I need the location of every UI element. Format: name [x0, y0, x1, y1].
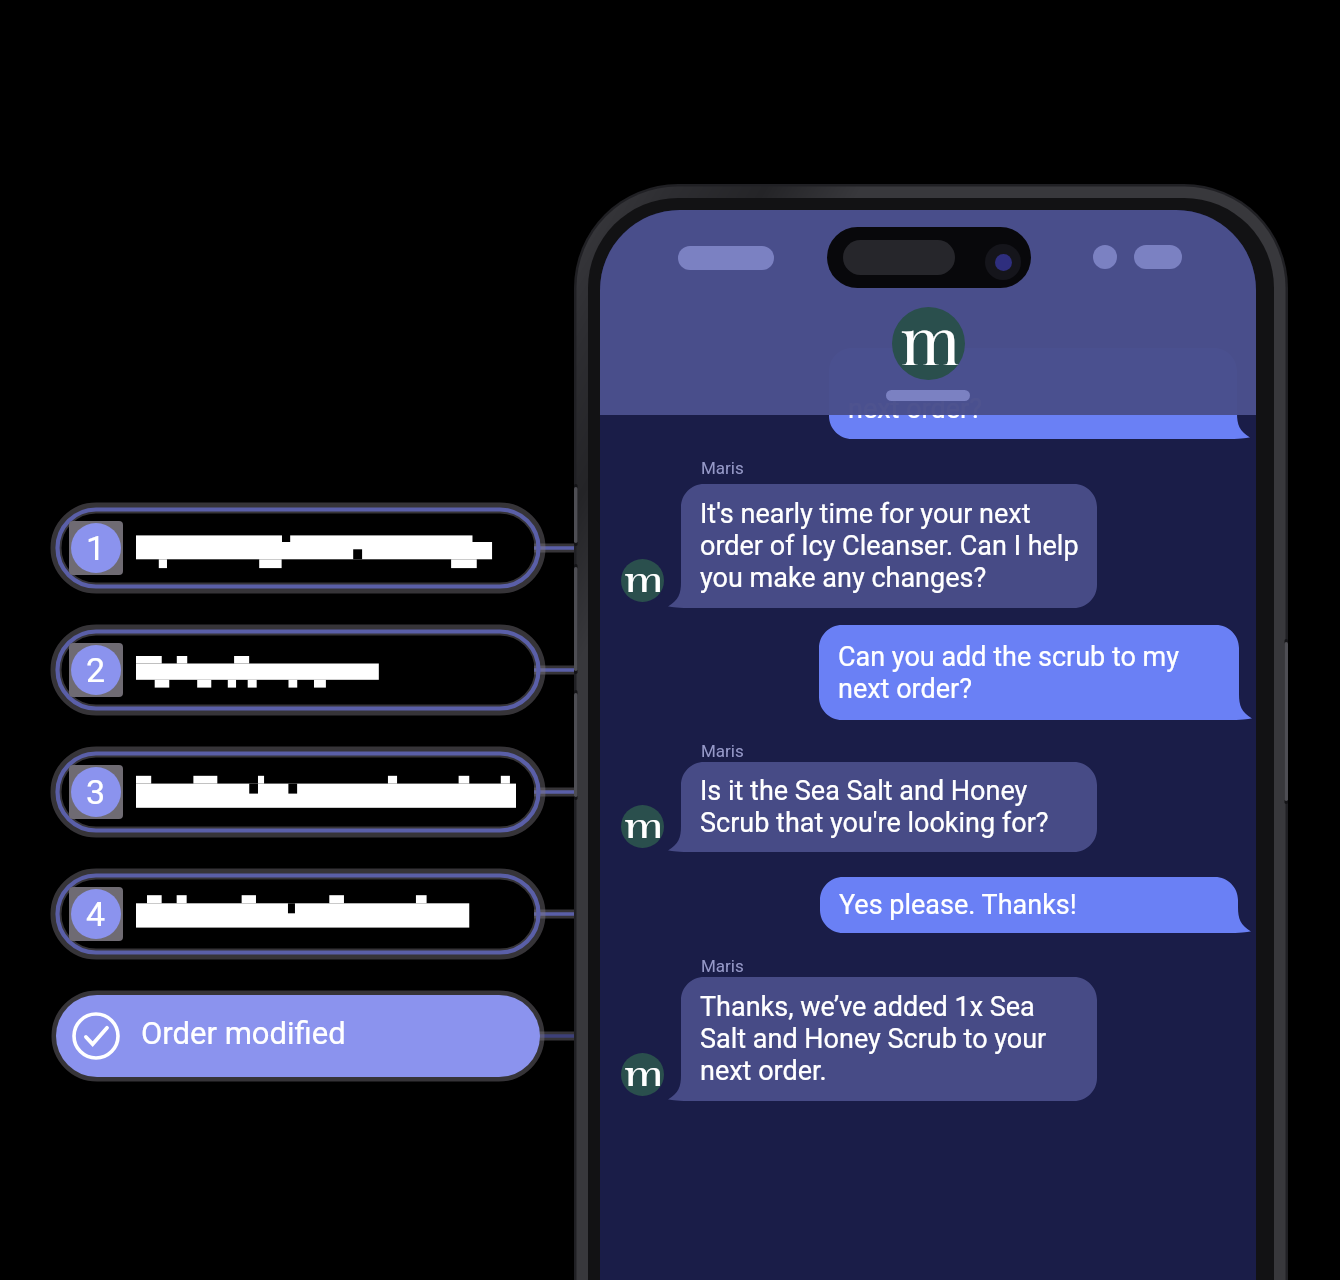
- staticText: 3: [86, 772, 106, 812]
- staticText: Can you add the scrub to my: [838, 641, 1180, 673]
- button[interactable]: Step 1: [56, 508, 540, 588]
- button[interactable]: Order modified: [56, 995, 540, 1077]
- button[interactable]: Step 4: [56, 874, 540, 954]
- button[interactable]: Yes please. Thanks!: [820, 877, 1238, 933]
- staticText: Maris: [701, 458, 744, 478]
- staticText: It's nearly time for your next: [700, 498, 1031, 530]
- staticText: Thanks, we’ve added 1x Sea: [700, 991, 1035, 1023]
- button[interactable]: Step 3: [56, 752, 540, 832]
- staticText: next order.: [700, 1055, 827, 1087]
- button[interactable]: m: [600, 210, 1256, 415]
- staticText: m: [624, 1053, 664, 1086]
- staticText: Order modified: [141, 1015, 346, 1051]
- staticText: you make any changes?: [700, 562, 987, 594]
- button[interactable]: Step 2: [56, 630, 540, 710]
- staticText: Salt and Honey Scrub to your: [700, 1023, 1047, 1055]
- staticText: order of Icy Cleanser. Can I help: [700, 530, 1079, 562]
- button[interactable]: Can you add the scrub to my: [819, 625, 1239, 720]
- staticText: m: [624, 559, 664, 592]
- staticText: Is it the Sea Salt and Honey: [700, 775, 1028, 807]
- button[interactable]: next order?: [829, 348, 1237, 439]
- button[interactable]: Thanks, we’ve added 1x Sea: [681, 977, 1097, 1101]
- staticText: Maris: [701, 741, 744, 761]
- staticText: next order?: [848, 393, 982, 425]
- staticText: 4: [86, 894, 106, 934]
- staticText: m: [624, 805, 664, 838]
- staticText: Maris: [701, 956, 744, 976]
- staticText: m: [900, 307, 961, 365]
- button[interactable]: It's nearly time for your next: [681, 484, 1097, 608]
- staticText: Yes please. Thanks!: [839, 889, 1077, 921]
- staticText: 2: [86, 650, 106, 690]
- staticText: 1: [86, 528, 106, 568]
- staticText: Scrub that you're looking for?: [700, 807, 1049, 839]
- button[interactable]: Is it the Sea Salt and Honey: [681, 762, 1097, 852]
- staticText: next order?: [838, 673, 972, 705]
